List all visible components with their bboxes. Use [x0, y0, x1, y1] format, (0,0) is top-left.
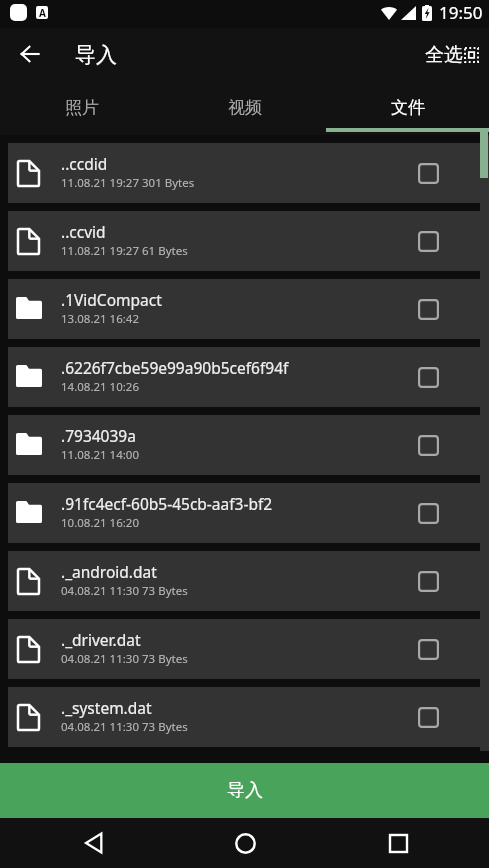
button[interactable]: 视频: [163, 82, 326, 128]
button[interactable]: Back: [0, 28, 59, 82]
staticText: 照片: [65, 97, 99, 118]
button[interactable]: 全选: [417, 35, 489, 75]
button[interactable]: Select .91fc4ecf-60b5-45cb-aaf3-bf2: [406, 491, 450, 535]
button[interactable]: Select .6226f7cbe59e99a90b5cef6f94f: [406, 355, 450, 399]
button[interactable]: Select ..ccvid: [406, 219, 450, 263]
staticText: .6226f7cbe59e99a90b5cef6f94f: [61, 357, 289, 378]
staticText: ._driver.dat: [61, 629, 141, 650]
staticText: 04.08.21 11:30 73 Bytes: [61, 651, 188, 667]
staticText: 13.08.21 16:42: [61, 311, 140, 327]
staticText: 11.08.21 19:27 301 Bytes: [61, 175, 195, 191]
button[interactable]: ._driver.dat: [8, 619, 480, 679]
button[interactable]: Select .7934039a: [406, 423, 450, 467]
staticText: ._system.dat: [61, 697, 152, 718]
button[interactable]: Select ._system.dat: [406, 695, 450, 739]
button[interactable]: Back: [67, 818, 119, 868]
staticText: A: [39, 6, 46, 19]
staticText: .91fc4ecf-60b5-45cb-aaf3-bf2: [61, 493, 273, 514]
staticText: 10.08.21 16:20: [61, 515, 140, 531]
button[interactable]: Select ..ccdid: [406, 151, 450, 195]
button[interactable]: Select ._driver.dat: [406, 627, 450, 671]
button[interactable]: ..ccdid: [8, 143, 480, 203]
button[interactable]: Select ._android.dat: [406, 559, 450, 603]
button[interactable]: .1VidCompact: [8, 279, 480, 339]
button[interactable]: 文件: [326, 82, 489, 128]
staticText: .1VidCompact: [61, 289, 162, 310]
button[interactable]: ..ccvid: [8, 211, 480, 271]
button[interactable]: Select .1VidCompact: [406, 287, 450, 331]
button[interactable]: 照片: [0, 82, 163, 128]
button[interactable]: 导入: [0, 763, 489, 818]
button[interactable]: ._android.dat: [8, 551, 480, 611]
button[interactable]: ._system.dat: [8, 687, 480, 747]
staticText: 04.08.21 11:30 73 Bytes: [61, 583, 188, 599]
button[interactable]: .91fc4ecf-60b5-45cb-aaf3-bf2: [8, 483, 480, 543]
staticText: 文件: [391, 97, 425, 118]
button[interactable]: Home: [219, 818, 271, 868]
staticText: 19:50: [439, 1, 483, 24]
staticText: 导入: [75, 42, 117, 68]
staticText: 11.08.21 19:27 61 Bytes: [61, 243, 188, 259]
staticText: ..ccvid: [61, 221, 106, 242]
staticText: ._android.dat: [61, 561, 157, 582]
staticText: 全选: [425, 43, 463, 67]
button[interactable]: Recents: [372, 818, 424, 868]
staticText: 视频: [228, 97, 262, 118]
staticText: 11.08.21 14:00: [61, 447, 140, 463]
button[interactable]: .6226f7cbe59e99a90b5cef6f94f: [8, 347, 480, 407]
staticText: .7934039a: [61, 425, 136, 446]
staticText: 04.08.21 11:30 73 Bytes: [61, 719, 188, 735]
button[interactable]: .7934039a: [8, 415, 480, 475]
staticText: 导入: [227, 779, 263, 802]
staticText: 14.08.21 10:26: [61, 379, 140, 395]
staticText: ..ccdid: [61, 153, 108, 174]
